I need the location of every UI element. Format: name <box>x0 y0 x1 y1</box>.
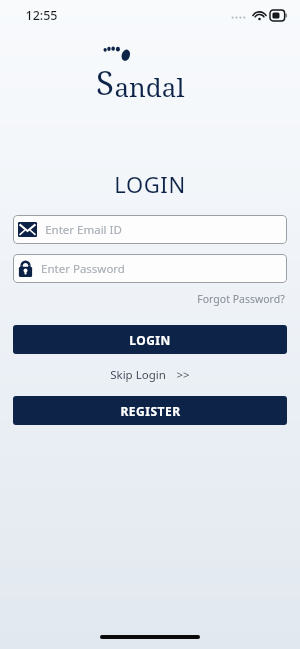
other: Email <box>18 222 37 237</box>
staticText: Skip Login <box>110 367 166 383</box>
staticText: S <box>96 60 114 105</box>
staticText: LOGIN <box>129 332 171 348</box>
staticText: >> <box>176 367 190 383</box>
staticText: REGISTER <box>120 403 181 419</box>
button[interactable]: Enter Password <box>13 254 287 283</box>
staticText: 12:55 <box>25 7 58 24</box>
other: Password <box>18 260 33 277</box>
button[interactable]: Skip Login <box>102 363 198 387</box>
button[interactable]: Enter Email ID <box>13 215 287 244</box>
button[interactable]: REGISTER <box>13 396 287 425</box>
staticText: LOGIN <box>114 169 186 199</box>
staticText: Enter Email ID <box>45 222 122 238</box>
button[interactable]: Forgot Password? <box>195 290 287 308</box>
staticText: Forgot Password? <box>197 292 285 306</box>
button[interactable]: LOGIN <box>13 325 287 354</box>
staticText: Enter Password <box>41 261 125 277</box>
staticText: andal <box>114 69 185 104</box>
